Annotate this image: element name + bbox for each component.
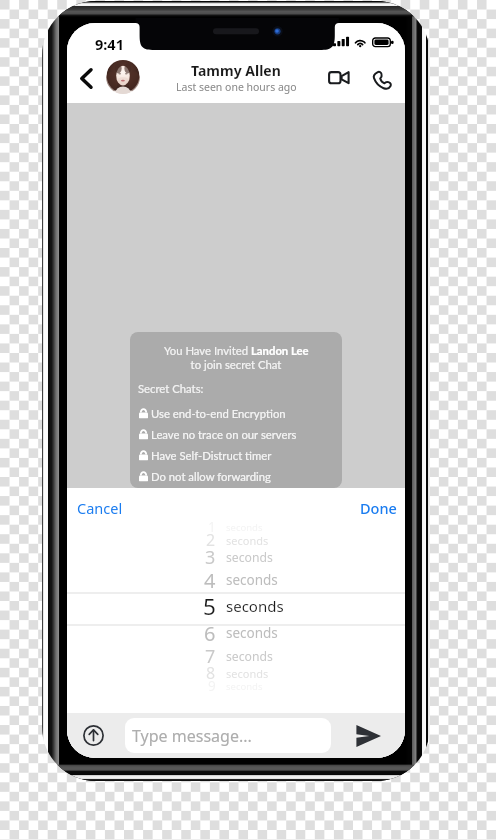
staticText: 3 <box>205 545 216 570</box>
staticText: 8 <box>206 662 216 684</box>
staticText: 9:41 <box>95 34 124 54</box>
staticText: seconds <box>226 571 278 589</box>
staticText: seconds <box>226 549 273 566</box>
staticText: to join secret Chat <box>130 358 342 372</box>
button[interactable]: Attach <box>79 721 107 749</box>
staticText: Leave no trace on our servers <box>151 428 297 442</box>
staticText: 1 <box>208 518 216 536</box>
staticText: seconds <box>226 521 263 534</box>
staticText: Type message... <box>132 725 252 747</box>
staticText: seconds <box>226 624 278 642</box>
staticText: seconds <box>226 533 269 548</box>
staticText: Use end-to-end Encryption <box>151 407 286 421</box>
staticText: Have Self-Distruct timer <box>151 449 272 463</box>
staticText: 5 <box>203 591 216 622</box>
button[interactable]: Video call <box>323 62 355 94</box>
staticText: 9 <box>208 677 216 695</box>
button[interactable]: Back <box>70 62 102 94</box>
staticText: Secret Chats: <box>138 382 204 396</box>
staticText: 6 <box>204 620 216 647</box>
staticText: Tammy Allen <box>191 61 281 80</box>
staticText: seconds <box>226 648 273 665</box>
staticText: seconds <box>226 596 284 616</box>
button[interactable]: Send <box>351 720 385 752</box>
button[interactable]: Cancel <box>77 498 123 518</box>
staticText: seconds <box>226 666 269 681</box>
staticText: Last seen one hours ago <box>176 80 297 94</box>
staticText: 4 <box>204 567 216 594</box>
staticText: 7 <box>205 644 216 669</box>
staticText: Do not allow forwarding <box>151 470 271 484</box>
staticText: Landon Lee <box>251 344 309 358</box>
staticText: You Have Invited <box>164 344 251 358</box>
button[interactable]: Type message... <box>125 718 331 753</box>
staticText: Done <box>360 498 397 518</box>
staticText: Cancel <box>77 498 123 518</box>
staticText: 2 <box>206 529 216 551</box>
button[interactable]: Voice call <box>364 62 400 98</box>
button[interactable]: Done <box>360 498 397 518</box>
staticText: seconds <box>226 680 263 693</box>
